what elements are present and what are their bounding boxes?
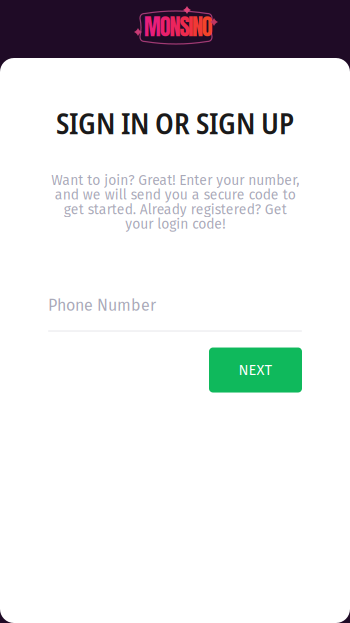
- staticText: I: [188, 9, 193, 44]
- staticText: SIGN IN OR SIGN UP: [56, 103, 294, 143]
- staticText: S: [179, 9, 189, 44]
- staticText: NEXT: [238, 361, 272, 379]
- staticText: N: [170, 9, 181, 44]
- staticText: Phone Number: [48, 296, 156, 315]
- staticText: Want to join? Great! Enter your number, …: [51, 172, 299, 233]
- staticText: O: [160, 9, 171, 44]
- button[interactable]: NEXT: [209, 347, 302, 392]
- staticText: N: [192, 9, 203, 44]
- staticText: O: [202, 9, 213, 44]
- staticText: M: [144, 9, 161, 44]
